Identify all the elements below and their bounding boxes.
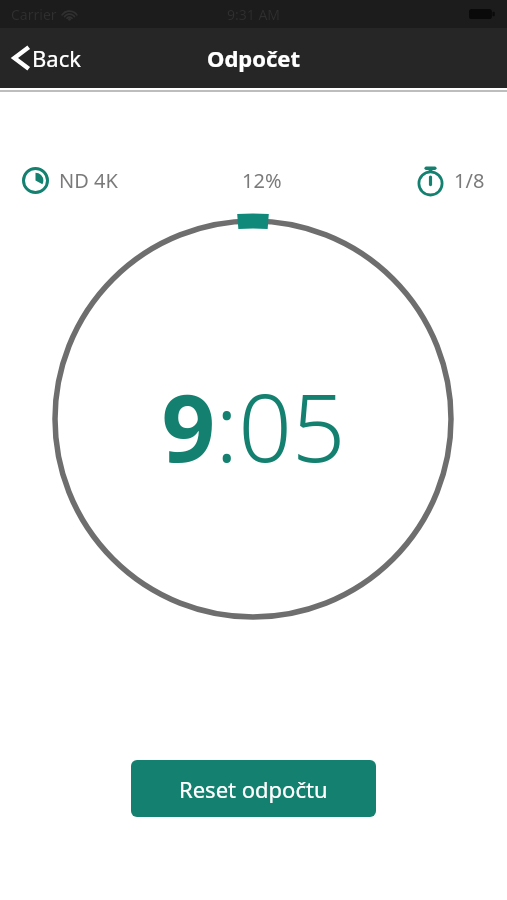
- staticText: 12%: [242, 167, 282, 194]
- button[interactable]: Shots: [416, 166, 485, 195]
- other: Shots: [416, 166, 445, 195]
- staticText: Odpočet: [207, 43, 300, 73]
- other: ND filter: [22, 167, 49, 194]
- staticText: Reset odpočtu: [179, 774, 328, 804]
- staticText: 1/8: [454, 167, 485, 194]
- staticText: Carrier: [11, 5, 57, 24]
- button[interactable]: Reset odpočtu: [131, 760, 376, 817]
- staticText: Back: [32, 43, 81, 73]
- button[interactable]: Back: [0, 35, 95, 81]
- button[interactable]: ND filter: [22, 167, 118, 194]
- staticText: ND 4K: [59, 167, 118, 194]
- staticText: 9:31 AM: [227, 5, 281, 24]
- staticText: 9:05: [161, 362, 346, 490]
